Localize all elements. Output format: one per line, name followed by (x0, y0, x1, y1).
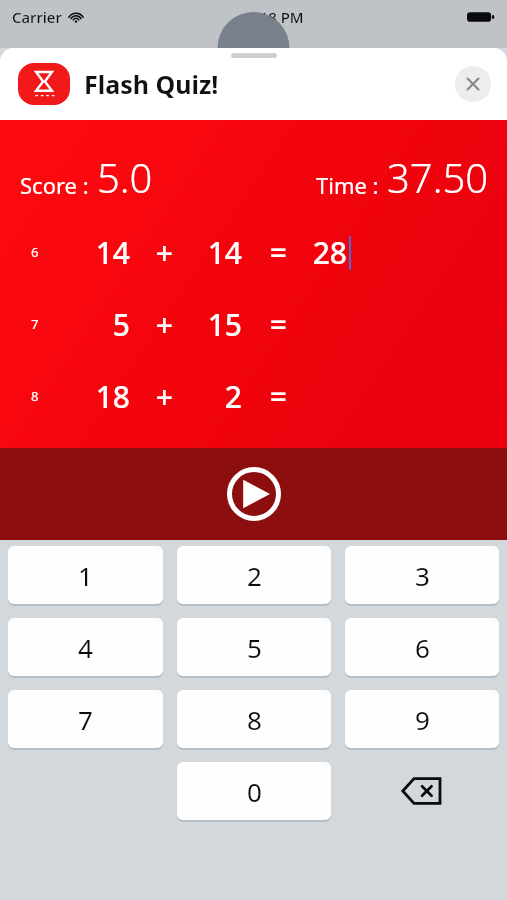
staticText: 5 (247, 630, 262, 665)
button[interactable]: Close (455, 66, 491, 102)
staticText: Score : (20, 170, 89, 200)
staticText: = (269, 376, 287, 417)
staticText: + (155, 304, 173, 345)
button[interactable]: 5 (177, 618, 331, 676)
staticText: 3 (415, 558, 430, 593)
staticText: 5 (112, 304, 130, 345)
staticText: Carrier (12, 7, 62, 27)
staticText: 9 (415, 702, 430, 737)
button[interactable]: 6 (345, 618, 499, 676)
button[interactable]: 1 (8, 546, 163, 604)
staticText: + (155, 232, 173, 273)
button[interactable]: 7 (0, 302, 507, 346)
button[interactable]: Play (224, 464, 284, 524)
staticText: 4 (78, 630, 93, 665)
staticText: 8 (31, 387, 39, 405)
staticText: 5.0 (97, 150, 153, 204)
staticText: 14 (207, 232, 242, 273)
staticText: = (269, 232, 287, 273)
staticText: 37.50 (387, 150, 489, 204)
button[interactable]: Backspace (345, 762, 499, 820)
staticText: 7 (78, 702, 93, 737)
staticText: 15 (207, 304, 242, 345)
staticText: 14 (95, 232, 130, 273)
staticText: + (155, 376, 173, 417)
button[interactable]: 0 (177, 762, 331, 820)
button[interactable]: 9 (345, 690, 499, 748)
button[interactable]: 8 (0, 374, 507, 418)
button[interactable]: 2 (177, 546, 331, 604)
staticText: = (269, 304, 287, 345)
button[interactable]: 8 (177, 690, 331, 748)
button[interactable]: 7 (8, 690, 163, 748)
staticText: 18 (95, 376, 130, 417)
staticText: 7 (31, 315, 39, 333)
staticText: 6 (415, 630, 430, 665)
staticText: 2 (224, 376, 242, 417)
staticText: 0 (247, 774, 262, 809)
button[interactable]: 6 (0, 230, 507, 274)
button[interactable]: 3 (345, 546, 499, 604)
staticText: 3:18 PM (247, 7, 304, 27)
button[interactable]: 4 (8, 618, 163, 676)
staticText: 2 (247, 558, 262, 593)
staticText: 28 (312, 232, 347, 273)
staticText: Time : (316, 170, 379, 200)
staticText: 1 (78, 558, 93, 593)
staticText: Flash Quiz! (84, 67, 219, 101)
staticText: 6 (31, 243, 39, 261)
staticText: 8 (247, 702, 262, 737)
